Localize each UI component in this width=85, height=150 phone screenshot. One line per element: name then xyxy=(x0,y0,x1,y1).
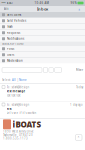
staticText: Edit xyxy=(3,7,8,11)
staticText: Sent Items xyxy=(7,13,21,16)
staticText: SUBSCRIPTIONS xyxy=(2,42,23,45)
button[interactable]: All xyxy=(12,78,16,82)
staticText: Let's see if it's workin xyxy=(6,111,36,115)
staticText: •••• xyxy=(1,1,5,5)
staticText: 1 day ago xyxy=(70,103,83,106)
staticText: Taylorsville, UT 84123 xyxy=(3,133,33,137)
button[interactable]: Compose xyxy=(73,6,85,12)
staticText: 1890 West Amity Drive xyxy=(3,130,34,133)
staticText: text text text xyxy=(6,94,20,97)
staticText: Posts xyxy=(7,47,14,50)
staticText: None xyxy=(19,78,27,82)
button[interactable]: Trash xyxy=(0,24,85,29)
button[interactable]: Next page xyxy=(55,68,62,72)
button[interactable]: Users xyxy=(0,52,85,57)
staticText: Inbox xyxy=(37,6,48,12)
staticText: To: sclark@design xyxy=(6,103,29,106)
staticText: 96% xyxy=(70,1,76,5)
button[interactable]: Sent Items xyxy=(0,12,85,17)
button[interactable]: Sold Vehicles xyxy=(0,18,85,23)
button[interactable]: Requests xyxy=(0,30,85,35)
button[interactable]: Previous page xyxy=(43,68,48,72)
staticText: Filter xyxy=(76,68,83,72)
staticText: AT&T xyxy=(6,1,12,5)
staticText: All xyxy=(12,78,16,82)
button[interactable]: Back to top xyxy=(75,135,82,140)
button[interactable]: To: sclark@design xyxy=(0,101,85,118)
staticText: + xyxy=(78,6,80,12)
button[interactable]: Notifications xyxy=(0,36,85,41)
staticText: Test message xyxy=(6,89,25,93)
button[interactable]: Moderation xyxy=(0,58,85,63)
staticText: Test xyxy=(6,107,11,110)
button[interactable]: Filter xyxy=(76,68,83,72)
staticText: iBOATS xyxy=(12,119,41,130)
staticText: 10:46 AM xyxy=(34,1,48,5)
staticText: 1-800-535-1173 xyxy=(3,137,28,140)
button[interactable]: None xyxy=(19,78,27,82)
button[interactable]: To: sclark@design xyxy=(0,84,85,101)
staticText: Users xyxy=(7,53,14,56)
button[interactable]: Edit xyxy=(0,6,12,12)
staticText: To: sclark@design xyxy=(6,85,29,89)
staticText: ^ xyxy=(78,136,80,139)
staticText: Requests xyxy=(7,31,20,34)
staticText: Notifications xyxy=(7,37,24,40)
staticText: Select: xyxy=(2,78,11,82)
staticText: Moderation xyxy=(7,59,23,62)
staticText: Today xyxy=(76,85,83,89)
button[interactable]: Posts xyxy=(0,46,85,51)
staticText: Sold Vehicles xyxy=(7,19,26,22)
staticText: Trash xyxy=(7,25,13,28)
